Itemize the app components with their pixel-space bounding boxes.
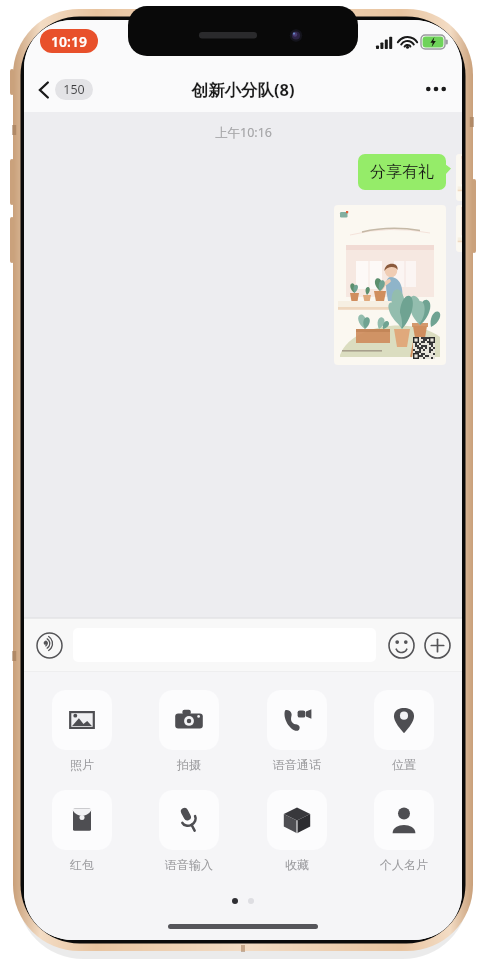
button[interactable]: Back	[34, 75, 97, 104]
staticText: 创新小分队(8)	[191, 78, 295, 101]
staticText: 10:19	[51, 32, 87, 51]
button[interactable]: Image	[456, 205, 462, 252]
staticText: 拍摄	[177, 757, 201, 772]
button[interactable]: More functions	[422, 630, 452, 660]
button[interactable]: More options	[418, 71, 454, 107]
button[interactable]: 照片	[38, 688, 126, 774]
button[interactable]: 分享有礼	[358, 154, 446, 190]
button[interactable]: 语音输入	[145, 788, 233, 874]
staticText: 收藏	[285, 857, 309, 872]
button[interactable]: Voice message	[34, 630, 64, 660]
staticText: 150	[63, 81, 85, 98]
staticText: 语音输入	[165, 857, 213, 872]
button[interactable]: 拍摄	[145, 688, 233, 774]
button[interactable]: Shared poster image	[334, 205, 446, 365]
staticText: 个人名片	[380, 857, 428, 872]
button[interactable]: 位置	[360, 688, 448, 774]
staticText: 上午10:16	[215, 124, 272, 141]
staticText: 位置	[392, 757, 416, 772]
button[interactable]: 红包	[38, 788, 126, 874]
staticText: 语音通话	[273, 757, 321, 772]
staticText: 红包	[70, 857, 94, 872]
button[interactable]: 语音通话	[253, 688, 341, 774]
staticText: 分享有礼	[370, 162, 434, 182]
button[interactable]: Image	[456, 154, 462, 201]
button[interactable]: Emoji	[386, 630, 416, 660]
button[interactable]: 个人名片	[360, 788, 448, 874]
button[interactable]: 收藏	[253, 788, 341, 874]
staticText: 照片	[70, 757, 94, 772]
